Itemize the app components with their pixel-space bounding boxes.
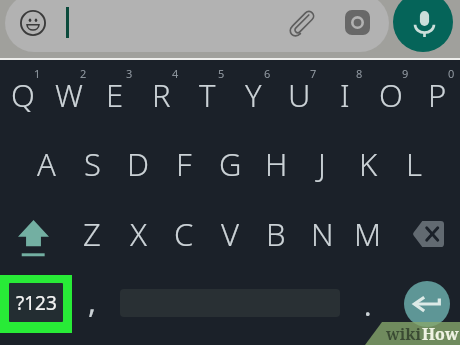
button[interactable]: K [345,129,391,199]
staticText: Q [11,74,35,116]
button[interactable] [5,0,389,52]
staticText: B [266,213,286,255]
button[interactable]: B [253,199,299,268]
button[interactable]: V [207,199,253,268]
button[interactable]: Enter [404,281,450,327]
staticText: M [354,213,382,255]
button[interactable]: J [299,129,345,199]
button[interactable]: A [23,129,69,199]
staticText: S [84,143,101,185]
staticText: K [359,143,378,185]
button[interactable]: 6 [230,60,276,129]
button[interactable]: , [69,275,115,335]
button[interactable]: ?123 [9,283,63,322]
button[interactable]: M [345,199,391,268]
staticText: 8 [356,66,363,81]
staticText: 9 [402,66,409,81]
staticText: 3 [126,66,133,81]
button[interactable]: Camera [345,10,370,35]
button[interactable]: Voice message [393,0,453,52]
button[interactable]: 5 [184,60,230,129]
staticText: N [311,213,334,255]
staticText: . [364,286,372,324]
button[interactable]: 3 [92,60,138,129]
button[interactable]: 7 [276,60,322,129]
button[interactable]: Z [69,199,115,268]
staticText: F [176,143,192,185]
button[interactable]: F [161,129,207,199]
staticText: 5 [218,66,225,81]
button[interactable]: 8 [322,60,368,129]
staticText: D [127,143,150,185]
button[interactable]: 2 [46,60,92,129]
button[interactable]: X [115,199,161,268]
staticText: 6 [264,66,271,81]
button[interactable]: G [207,129,253,199]
staticText: H [265,143,288,185]
staticText: T [199,74,216,116]
staticText: U [288,74,311,116]
button[interactable]: . [345,275,391,335]
button[interactable]: Attach [286,6,316,36]
staticText: E [106,74,124,116]
staticText: 4 [172,66,179,81]
button[interactable]: L [391,129,437,199]
staticText: L [406,143,422,185]
button[interactable]: Shift [0,199,69,268]
button[interactable]: Backspace [391,199,460,268]
button[interactable]: 1 [0,60,46,129]
staticText: Z [83,213,101,255]
staticText: W [55,74,83,116]
staticText: C [174,213,194,255]
staticText: How [422,323,459,345]
staticText: J [318,143,326,185]
button[interactable]: S [69,129,115,199]
staticText: 2 [80,66,87,81]
staticText: , [88,281,97,322]
button[interactable]: 4 [138,60,184,129]
button[interactable]: 9 [368,60,414,129]
staticText: ?123 [16,290,57,316]
button[interactable]: D [115,129,161,199]
staticText: I [340,74,350,116]
button[interactable]: Emoji [20,10,46,36]
staticText: R [152,74,171,116]
staticText: P [428,74,447,116]
staticText: 0 [448,66,455,81]
staticText: O [379,74,403,116]
staticText: 1 [34,66,41,81]
staticText: wiki [386,323,422,345]
button[interactable]: C [161,199,207,268]
staticText: 7 [310,66,317,81]
staticText: V [221,213,240,255]
button[interactable]: N [299,199,345,268]
staticText: A [37,143,56,185]
staticText: X [130,213,147,255]
staticText: G [219,143,242,185]
button[interactable]: H [253,129,299,199]
button[interactable]: 0 [414,60,460,129]
staticText: Y [245,74,262,116]
